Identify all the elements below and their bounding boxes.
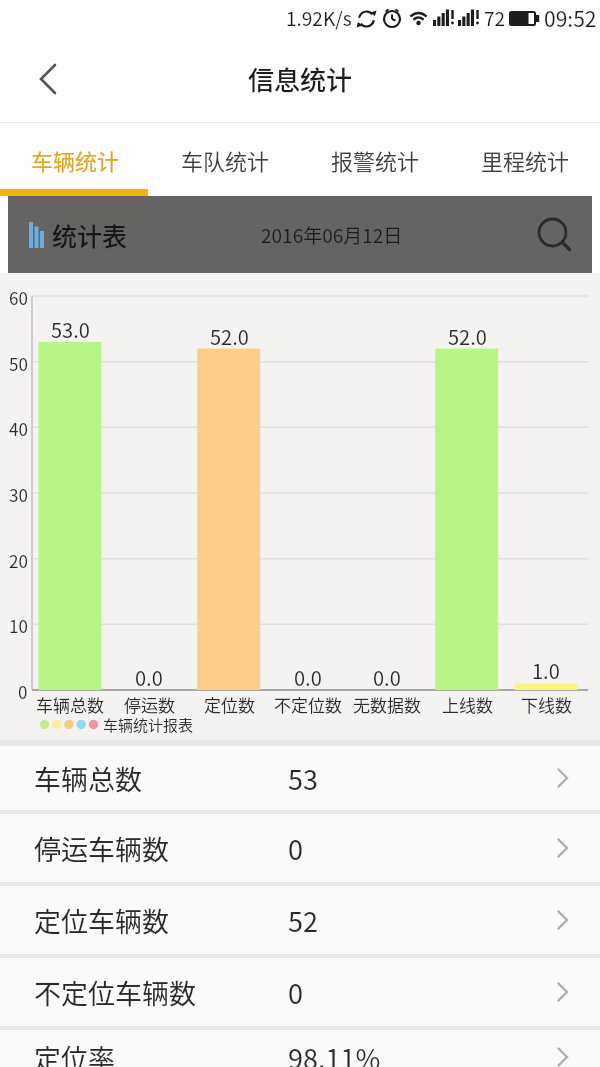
staticText: 不定位车辆数 [34, 973, 196, 1012]
staticText: 0 [18, 679, 28, 701]
staticText: 0 [288, 829, 303, 868]
button[interactable]: 里程统计 [450, 123, 600, 196]
staticText: 40 [9, 416, 28, 438]
staticText: 0 [288, 973, 303, 1012]
staticText: 下线数 [521, 692, 572, 714]
staticText: 50 [9, 351, 28, 373]
staticText: 09:52 [544, 3, 597, 33]
staticText: 无数据数 [353, 692, 421, 714]
staticText: 统计表 [52, 217, 128, 253]
button[interactable]: 定位率 [0, 1030, 600, 1067]
button[interactable]: 统计表 [8, 196, 592, 273]
staticText: 98.11% [288, 1038, 381, 1067]
staticText: 52 [288, 901, 318, 940]
staticText: 52.0 [210, 322, 249, 346]
staticText: 报警统计 [331, 144, 420, 176]
staticText: 定位车辆数 [34, 901, 169, 940]
staticText: 53.0 [51, 315, 90, 339]
staticText: 车辆统计 [31, 144, 120, 176]
button[interactable]: 不定位车辆数 [0, 958, 600, 1026]
staticText: 里程统计 [481, 144, 570, 176]
staticText: 1.92K/s [286, 4, 352, 32]
staticText: 53 [288, 759, 318, 798]
staticText: 20 [9, 548, 28, 570]
staticText: 2016年06月12日 [261, 221, 403, 249]
staticText: 上线数 [442, 692, 493, 714]
staticText: 10 [9, 613, 28, 635]
staticText: 定位率 [34, 1038, 115, 1067]
staticText: 0.0 [294, 663, 322, 687]
staticText: 72 [484, 4, 506, 32]
button[interactable]: 报警统计 [300, 123, 450, 196]
staticText: 车队统计 [181, 144, 270, 176]
button[interactable] [26, 57, 70, 101]
button[interactable]: 车辆总数 [0, 746, 600, 810]
staticText: 60 [9, 285, 28, 307]
button[interactable]: 停运车辆数 [0, 814, 600, 882]
staticText: 1.0 [532, 656, 560, 680]
staticText: 0.0 [135, 663, 163, 687]
button[interactable]: 车辆统计 [0, 123, 150, 196]
staticText: 停运车辆数 [34, 829, 169, 868]
staticText: 0.0 [373, 663, 401, 687]
staticText: 30 [9, 482, 28, 504]
staticText: 信息统计 [248, 60, 353, 98]
button[interactable]: 定位车辆数 [0, 886, 600, 954]
staticText: 车辆总数 [34, 759, 142, 798]
button[interactable]: 车队统计 [150, 123, 300, 196]
staticText: 52.0 [448, 322, 487, 346]
staticText: 车辆总数 [36, 692, 104, 714]
staticText: 不定位数 [274, 692, 342, 714]
staticText: 定位数 [204, 692, 255, 714]
staticText: 车辆统计报表 [103, 714, 194, 736]
staticText: 停运数 [124, 692, 175, 714]
